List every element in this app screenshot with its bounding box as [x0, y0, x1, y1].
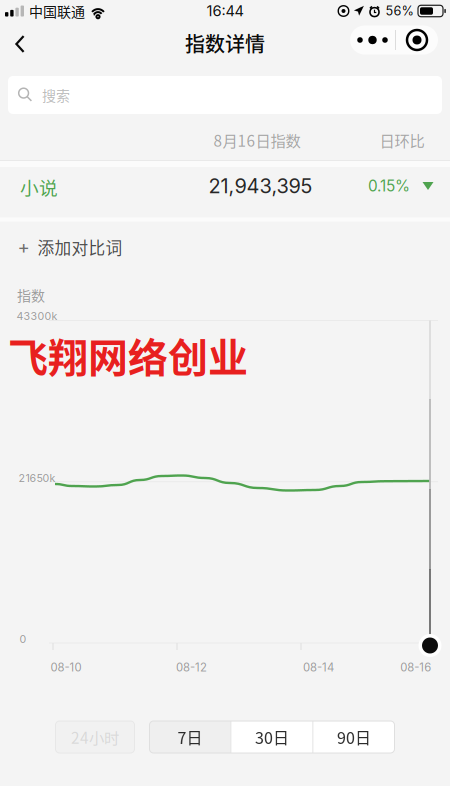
- staticText: 8月16日指数: [213, 129, 300, 151]
- button[interactable]: +: [3, 227, 136, 267]
- staticText: 08-14: [303, 661, 334, 674]
- staticText: 0: [19, 632, 26, 645]
- staticText: 24小时: [71, 726, 119, 748]
- staticText: 56%: [385, 3, 413, 19]
- staticText: 0.15%: [368, 177, 410, 195]
- button[interactable]: 90日: [313, 721, 394, 753]
- staticText: 30日: [255, 725, 289, 749]
- button[interactable]: 24小时: [55, 721, 134, 753]
- staticText: 21650k: [18, 471, 55, 484]
- staticText: 7日: [177, 725, 202, 749]
- staticText: 16:44: [206, 2, 243, 20]
- button[interactable]: 更多: [350, 25, 438, 54]
- button[interactable]: 返回: [0, 22, 42, 66]
- staticText: 指数: [17, 285, 45, 305]
- staticText: 43300k: [16, 309, 57, 322]
- staticText: 搜索: [42, 85, 70, 105]
- button[interactable]: 搜索: [8, 76, 442, 114]
- staticText: 21,943,395: [208, 174, 312, 198]
- staticText: 飞翔网络创业: [8, 326, 248, 384]
- button[interactable]: 30日: [231, 721, 312, 753]
- staticText: 90日: [337, 725, 371, 749]
- staticText: 08-16: [400, 661, 431, 674]
- staticText: 日环比: [379, 129, 424, 151]
- button[interactable]: 7日: [149, 721, 230, 753]
- staticText: 添加对比词: [37, 235, 122, 259]
- staticText: 指数详情: [185, 28, 265, 57]
- staticText: +: [17, 236, 29, 258]
- staticText: 08-12: [176, 661, 207, 674]
- staticText: 小说: [20, 173, 58, 200]
- staticText: 08-10: [50, 661, 81, 674]
- staticText: 中国联通: [29, 1, 85, 21]
